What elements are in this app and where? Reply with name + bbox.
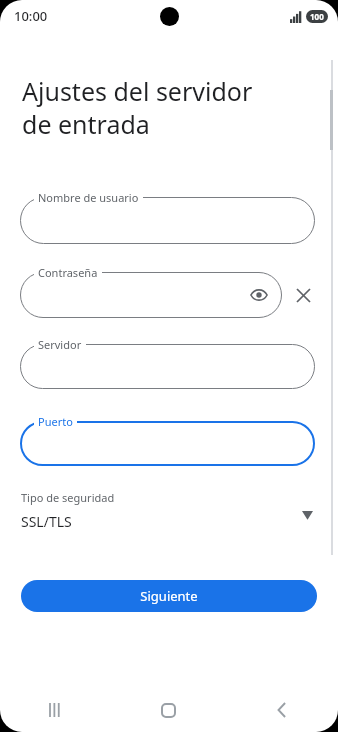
button[interactable] — [20, 344, 315, 389]
button[interactable] — [20, 421, 315, 466]
button[interactable]: Tipo de seguridad — [0, 484, 338, 536]
staticText: Nombre de usuario — [38, 190, 139, 204]
button[interactable]: Mostrar contraseña — [246, 282, 272, 308]
staticText: Tipo de seguridad — [21, 490, 115, 505]
button[interactable]: Borrar — [290, 282, 316, 308]
staticText: 100 — [310, 11, 324, 22]
button[interactable]: Recientes — [0, 688, 112, 732]
button[interactable]: Inicio — [112, 688, 225, 732]
button[interactable] — [20, 197, 315, 244]
button[interactable]: Siguiente — [21, 580, 317, 612]
staticText: Contraseña — [38, 265, 98, 279]
staticText: SSL/TLS — [21, 512, 72, 531]
staticText: 10:00 — [14, 7, 48, 25]
button[interactable]: Atrás — [225, 688, 338, 732]
button[interactable] — [20, 272, 282, 318]
staticText: Ajustes del servidor de entrada — [22, 74, 253, 141]
staticText: Siguiente — [140, 587, 198, 605]
staticText: Puerto — [38, 414, 73, 428]
staticText: Servidor — [38, 337, 82, 351]
